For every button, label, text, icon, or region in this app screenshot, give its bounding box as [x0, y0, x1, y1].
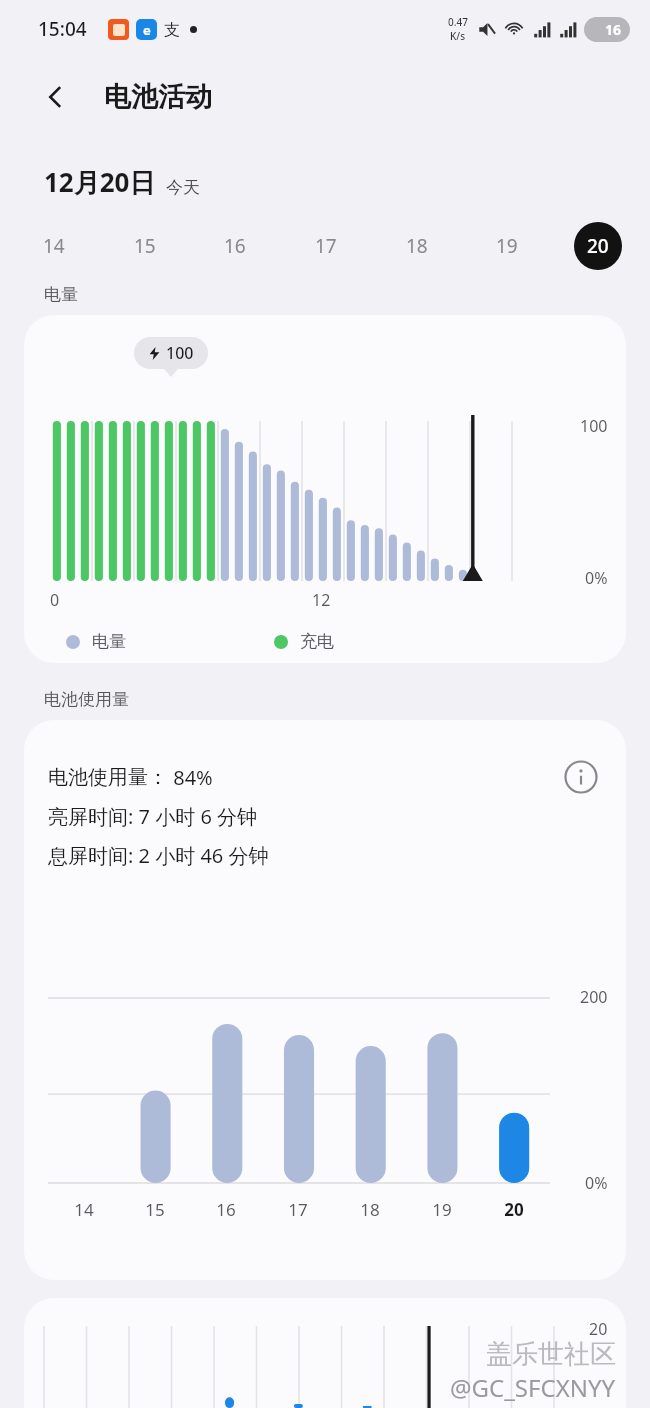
staticText: 15 [134, 233, 156, 259]
staticText: 16 [224, 233, 246, 259]
staticText: 今天 [166, 177, 200, 198]
button[interactable]: 20 [24, 1298, 626, 1408]
staticText: 0.47 [448, 15, 468, 29]
button[interactable]: 20 [574, 222, 622, 270]
staticText: 电池使用量 [44, 689, 129, 710]
button[interactable]: 返回 [34, 75, 78, 119]
staticText: 16 [605, 20, 622, 39]
staticText: 0% [585, 1172, 608, 1194]
staticText: 15:04 [38, 16, 87, 42]
staticText: 电量 [44, 284, 78, 305]
staticText: K/s [450, 29, 466, 43]
staticText: 14 [74, 1198, 94, 1221]
staticText: 盖乐世社区 [486, 1338, 616, 1371]
staticText: 12 [312, 589, 331, 611]
staticText: 17 [315, 233, 337, 259]
staticText: 84% [168, 764, 213, 791]
staticText: 19 [432, 1198, 452, 1221]
button[interactable]: 电池使用量： [24, 720, 626, 1280]
staticText: 0 [50, 589, 60, 611]
button[interactable]: 17 [302, 222, 350, 270]
button[interactable]: 14 [30, 222, 78, 270]
staticText: 亮屏时间: 7 小时 6 分钟 [48, 803, 258, 830]
staticText: 20 [504, 1198, 524, 1221]
button[interactable]: 18 [393, 222, 441, 270]
staticText: 16 [216, 1198, 236, 1221]
button[interactable]: 100 [24, 315, 626, 663]
staticText: 200 [580, 986, 608, 1008]
button[interactable]: 19 [483, 222, 531, 270]
staticText: 100 [166, 342, 194, 364]
staticText: 19 [496, 233, 518, 259]
button[interactable]: 15 [121, 222, 169, 270]
staticText: @GC_SFCXNYY [450, 1371, 616, 1404]
button[interactable]: 16 [211, 222, 259, 270]
staticText: 20 [589, 1318, 608, 1340]
staticText: 100 [580, 415, 608, 437]
staticText: 支 [164, 20, 180, 40]
button[interactable]: 信息 [560, 756, 602, 798]
staticText: 12月20日 [44, 164, 156, 200]
staticText: 20 [587, 233, 609, 259]
staticText: 电池使用量： [48, 765, 168, 790]
staticText: 14 [43, 233, 65, 259]
staticText: e [143, 21, 151, 39]
staticText: 18 [406, 233, 428, 259]
staticText: 电量 [92, 631, 126, 652]
staticText: 17 [288, 1198, 308, 1221]
staticText: 电池活动 [104, 80, 212, 114]
staticText: 0% [585, 567, 608, 589]
staticText: 18 [360, 1198, 380, 1221]
staticText: 充电 [300, 631, 334, 652]
staticText: 15 [145, 1198, 165, 1221]
staticText: 息屏时间: 2 小时 46 分钟 [48, 842, 269, 869]
